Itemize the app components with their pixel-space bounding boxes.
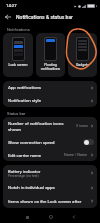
staticText: App notifications bbox=[8, 85, 42, 90]
staticText: Floating notifications bbox=[37, 63, 64, 71]
staticText: Lock screen bbox=[4, 63, 32, 67]
button[interactable]: App notifications bbox=[3, 81, 97, 94]
button[interactable]: Back bbox=[2, 11, 14, 23]
button[interactable]: Show connection speed bbox=[3, 135, 97, 149]
button[interactable]: Gadgets bbox=[68, 33, 97, 77]
button[interactable]: Battery indicator bbox=[3, 165, 97, 181]
button[interactable]: Home bbox=[39, 211, 62, 223]
staticText: Notifications bbox=[7, 27, 30, 32]
staticText: 14:27 bbox=[6, 3, 17, 8]
staticText: Edit carrier name bbox=[8, 153, 42, 158]
staticText: Notch in individual apps bbox=[8, 185, 55, 190]
staticText: Name / Name bbox=[64, 153, 88, 157]
button[interactable]: Items shown on the Lock screen after bbox=[3, 194, 97, 208]
staticText: Number of notification icons shown bbox=[8, 121, 76, 132]
button[interactable]: Edit carrier name bbox=[3, 149, 97, 161]
button[interactable]: Notch in individual apps bbox=[3, 181, 97, 194]
staticText: 3 icons bbox=[76, 124, 88, 128]
button[interactable]: Notification style bbox=[3, 94, 97, 107]
staticText: Show connection speed bbox=[8, 140, 83, 145]
staticText: Percentage (no text) bbox=[8, 174, 39, 178]
staticText: Notifications & status bar bbox=[16, 14, 73, 20]
staticText: Gadgets bbox=[69, 63, 96, 67]
button[interactable]: Floating notifications bbox=[36, 33, 65, 77]
button[interactable]: Lock screen bbox=[3, 33, 33, 77]
button[interactable]: Recent apps bbox=[15, 211, 39, 223]
staticText: Notification style bbox=[8, 98, 41, 103]
staticText: Battery indicator bbox=[8, 169, 41, 174]
staticText: Status bar bbox=[7, 111, 26, 116]
button[interactable]: Number of notification icons shown bbox=[3, 117, 97, 135]
staticText: Items shown on the Lock screen after bbox=[8, 199, 82, 204]
button[interactable]: Back bbox=[62, 211, 85, 223]
